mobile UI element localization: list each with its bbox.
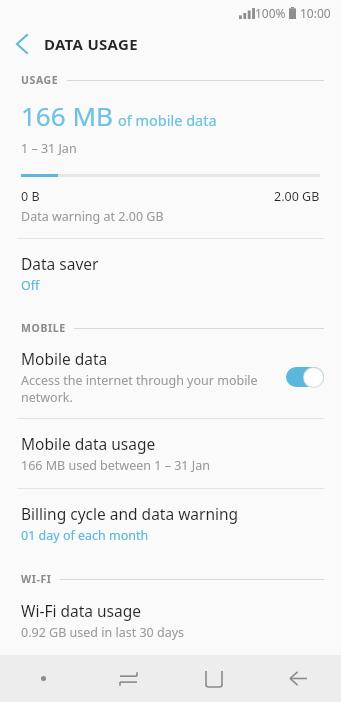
button[interactable]: Recent apps	[86, 655, 171, 702]
staticText: 100%	[255, 5, 286, 21]
staticText: Mobile data usage	[21, 433, 156, 454]
button[interactable]: Back	[0, 26, 44, 62]
staticText: DATA USAGE	[44, 34, 138, 54]
button[interactable]: Mobile data toggle	[286, 366, 324, 388]
staticText: Off	[21, 277, 40, 294]
staticText: Data warning at 2.00 GB	[21, 208, 164, 225]
staticText: 01 day of each month	[21, 527, 149, 544]
staticText: Data saver	[21, 253, 99, 274]
staticText: WI-FI	[21, 572, 52, 586]
button[interactable]: Mobile data usage	[0, 419, 341, 488]
button[interactable]: Billing cycle and data warning	[0, 489, 341, 558]
staticText: 166 MB	[21, 98, 113, 133]
staticText: Billing cycle and data warning	[21, 503, 239, 524]
staticText: 2.00 GB	[274, 188, 320, 205]
staticText: USAGE	[21, 73, 59, 87]
staticText: 10:00	[300, 5, 331, 21]
button[interactable]: Data saver	[0, 239, 341, 308]
staticText: Access the internet through your mobile …	[21, 372, 272, 405]
staticText: MOBILE	[21, 321, 66, 335]
button[interactable]: Wi-Fi data usage	[0, 586, 341, 655]
button[interactable]: Home	[171, 655, 256, 702]
button[interactable]: Back	[256, 655, 341, 702]
staticText: Mobile data	[21, 348, 108, 369]
button[interactable]: Mobile data	[0, 335, 341, 418]
staticText: 0.92 GB used in last 30 days	[21, 624, 185, 641]
staticText: 1 – 31 Jan	[21, 140, 77, 157]
staticText: of mobile data	[118, 110, 217, 130]
staticText: Wi-Fi data usage	[21, 600, 142, 621]
staticText: 166 MB used between 1 – 31 Jan	[21, 457, 210, 474]
staticText: 0 B	[21, 188, 40, 205]
button[interactable]: Notifications	[0, 655, 86, 702]
